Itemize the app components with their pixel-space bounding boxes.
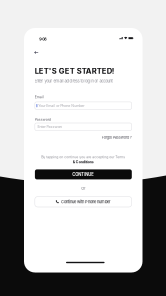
staticText: Enter your email address to login or acc… bbox=[35, 78, 113, 83]
staticText: LET'S GET STARTED! bbox=[35, 66, 115, 76]
staticText: Password bbox=[35, 117, 51, 122]
button[interactable]: Back bbox=[31, 48, 42, 57]
staticText: CONTINUE bbox=[72, 172, 94, 177]
button[interactable]: CONTINUE bbox=[35, 169, 132, 179]
staticText: By tapping on continue you are accepting… bbox=[41, 155, 125, 159]
button[interactable]: Continue with Phone number bbox=[35, 197, 132, 207]
staticText: & Conditions bbox=[73, 160, 94, 164]
staticText: Enter Password bbox=[37, 125, 62, 129]
staticText: Continue with Phone number bbox=[61, 199, 111, 204]
button[interactable]: & Conditions bbox=[73, 160, 94, 164]
staticText: Your Email or Phone Number bbox=[38, 103, 84, 108]
button[interactable]: Forgot Password ? bbox=[35, 135, 132, 140]
staticText: Forgot Password ? bbox=[102, 135, 132, 140]
staticText: 9:08 bbox=[39, 37, 46, 41]
staticText: Email bbox=[35, 95, 44, 99]
staticText: Or bbox=[81, 186, 85, 191]
